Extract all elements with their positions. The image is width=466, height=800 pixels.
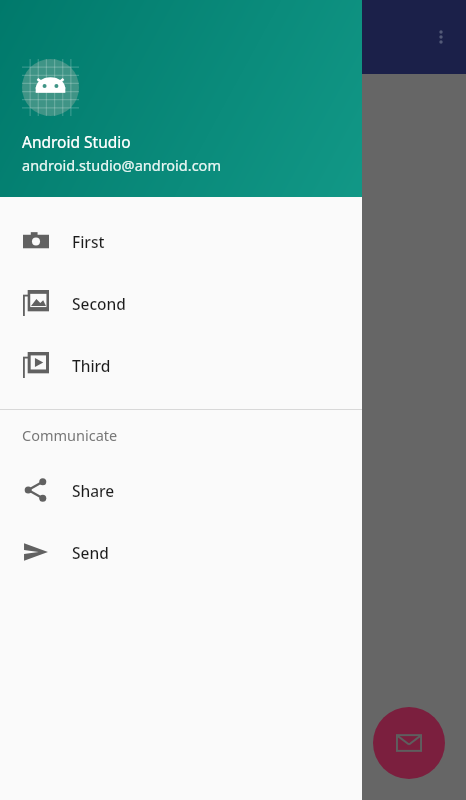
button[interactable]: Compose email [373,707,445,779]
staticText: First [72,231,105,252]
button[interactable]: More options [418,14,464,60]
staticText: android.studio@android.com [22,155,221,175]
button[interactable]: Second [0,272,362,334]
staticText: Send [72,542,109,563]
staticText: Share [72,480,115,501]
staticText: Third [72,355,111,376]
button[interactable]: First [0,210,362,272]
button[interactable]: Send [0,521,362,583]
button[interactable]: Share [0,459,362,521]
staticText: Second [72,293,126,314]
staticText: Communicate [22,425,118,445]
button[interactable]: Third [0,334,362,396]
staticText: Android Studio [22,131,131,152]
